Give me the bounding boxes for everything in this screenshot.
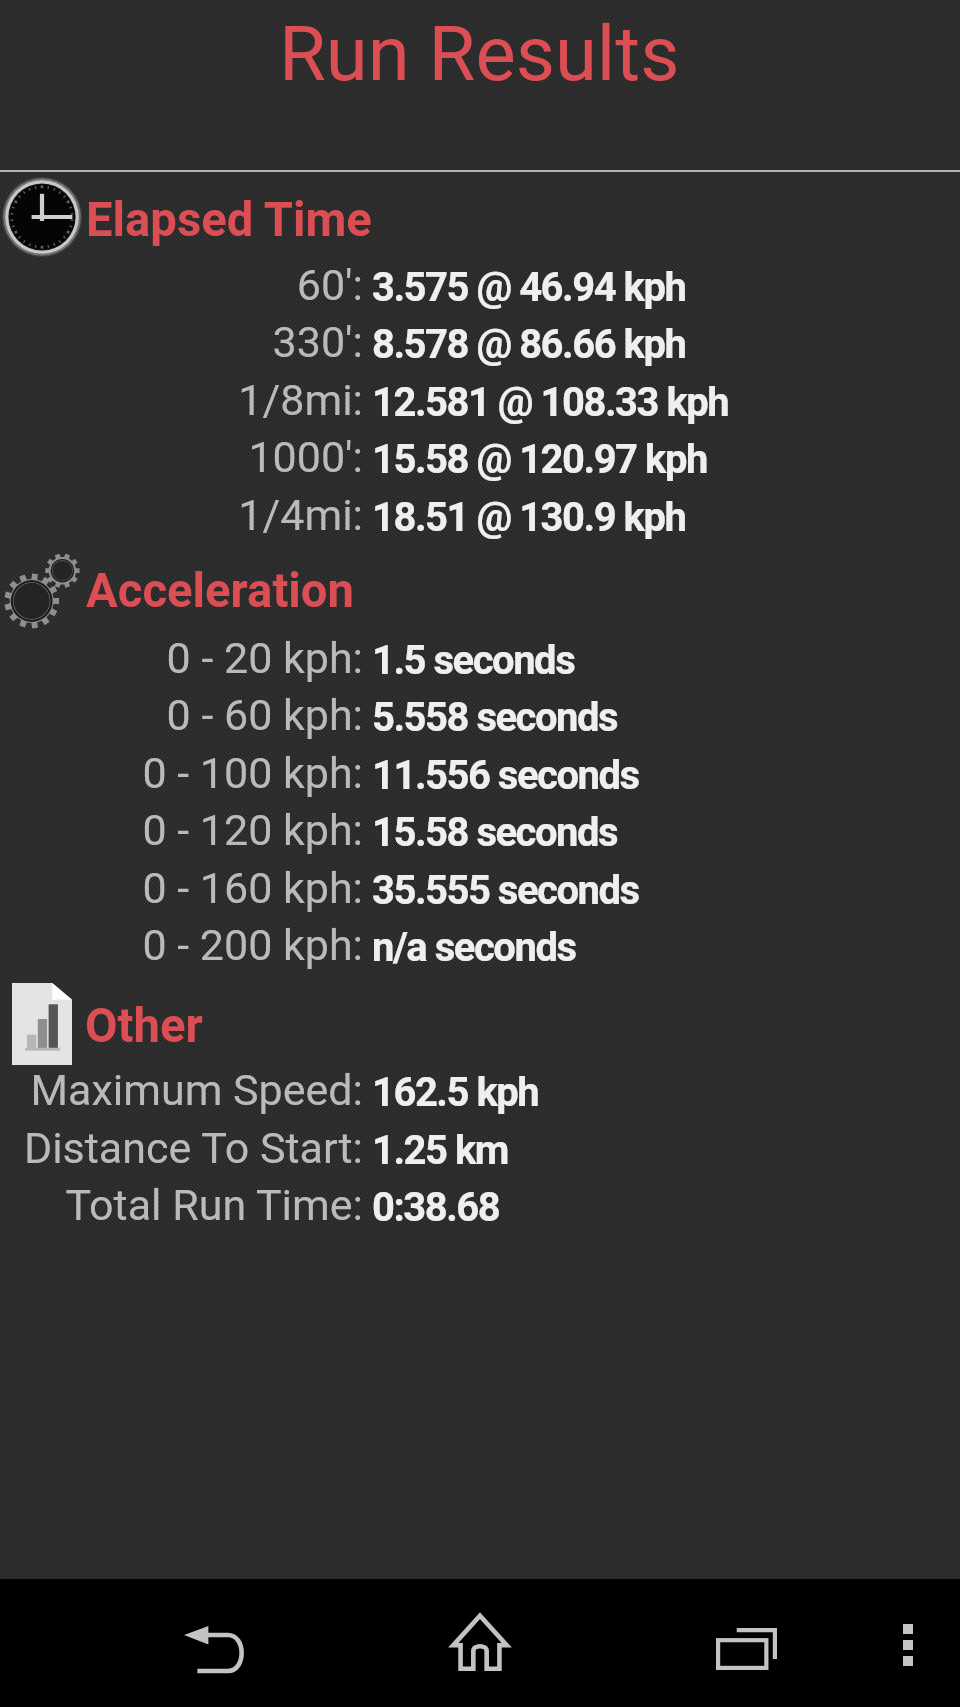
staticText: Maximum Speed: <box>0 1065 363 1115</box>
staticText: 330': <box>0 317 363 367</box>
staticText: 1000': <box>0 432 363 482</box>
button[interactable]: 0 - 100 kph: <box>0 738 960 795</box>
button[interactable]: 1/4mi: <box>0 480 960 537</box>
button[interactable]: 0 - 60 kph: <box>0 680 960 737</box>
staticText: 1.5 seconds <box>372 637 575 684</box>
staticText: 15.58 seconds <box>372 809 618 856</box>
button[interactable]: 0 - 160 kph: <box>0 853 960 910</box>
button[interactable]: Distance To Start: <box>0 1113 960 1170</box>
staticText: Run Results <box>279 9 680 98</box>
staticText: Total Run Time: <box>0 1180 363 1230</box>
staticText: Elapsed Time <box>86 192 372 247</box>
button[interactable]: Home <box>390 1586 570 1700</box>
button[interactable]: 0 - 120 kph: <box>0 795 960 852</box>
button[interactable]: 0 - 200 kph: <box>0 910 960 967</box>
button[interactable]: 1000': <box>0 422 960 479</box>
staticText: 0:38.68 <box>372 1184 500 1231</box>
staticText: 0 - 60 kph: <box>0 690 363 740</box>
button[interactable]: Recent apps <box>656 1586 836 1700</box>
staticText: 15.58 @ 120.97 kph <box>372 436 707 483</box>
staticText: 11.556 seconds <box>372 752 639 799</box>
button[interactable]: 60': <box>0 250 960 307</box>
staticText: 3.575 @ 46.94 kph <box>372 264 686 311</box>
staticText: 0 - 120 kph: <box>0 805 363 855</box>
button[interactable]: 1/8mi: <box>0 365 960 422</box>
staticText: 5.558 seconds <box>372 694 618 741</box>
staticText: 35.555 seconds <box>372 867 639 914</box>
staticText: 0 - 20 kph: <box>0 633 363 683</box>
staticText: Acceleration <box>86 563 354 618</box>
staticText: 1.25 km <box>372 1127 508 1174</box>
staticText: 0 - 200 kph: <box>0 920 363 970</box>
staticText: 0 - 100 kph: <box>0 748 363 798</box>
staticText: 18.51 @ 130.9 kph <box>372 494 686 541</box>
staticText: 12.581 @ 108.33 kph <box>372 379 729 426</box>
staticText: 8.578 @ 86.66 kph <box>372 321 686 368</box>
button[interactable]: 330': <box>0 307 960 364</box>
staticText: 60': <box>0 260 363 310</box>
staticText: Other <box>85 998 203 1053</box>
button[interactable]: Maximum Speed: <box>0 1055 960 1112</box>
button[interactable]: More options <box>856 1586 960 1700</box>
staticText: Distance To Start: <box>0 1123 363 1173</box>
staticText: 162.5 kph <box>372 1069 539 1116</box>
staticText: 0 - 160 kph: <box>0 863 363 913</box>
button[interactable]: 0 - 20 kph: <box>0 623 960 680</box>
button[interactable]: Total Run Time: <box>0 1170 960 1227</box>
staticText: n/a seconds <box>372 924 576 971</box>
button[interactable]: Back <box>124 1586 304 1700</box>
staticText: 1/4mi: <box>0 490 363 540</box>
staticText: 1/8mi: <box>0 375 363 425</box>
